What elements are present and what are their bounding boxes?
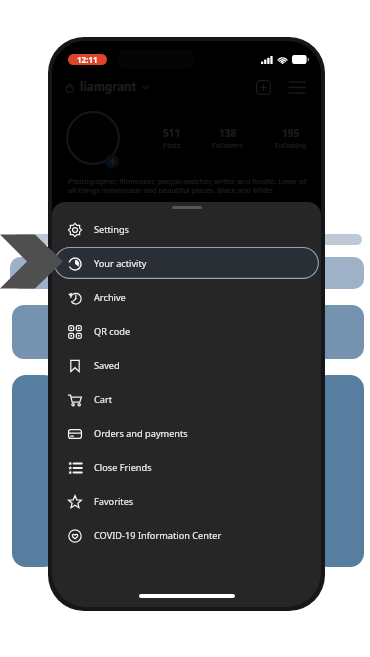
staticText: QR code xyxy=(94,325,131,338)
button[interactable]: Orders and payments xyxy=(52,416,321,450)
staticText: Close Friends xyxy=(94,461,152,474)
button[interactable]: COVID-19 Information Center xyxy=(52,518,321,552)
button[interactable]: Your activity xyxy=(52,246,321,280)
button[interactable]: New post xyxy=(251,75,275,99)
button[interactable]: Open menu xyxy=(285,75,309,99)
staticText: 195 xyxy=(282,126,300,140)
staticText: Posts xyxy=(163,141,181,151)
button[interactable]: QR code xyxy=(52,314,321,348)
button[interactable]: Archive xyxy=(52,280,321,314)
button[interactable]: Saved xyxy=(52,348,321,382)
staticText: COVID-19 Information Center xyxy=(94,529,222,542)
staticText: Saved xyxy=(94,359,120,372)
button[interactable]: Favorites xyxy=(52,484,321,518)
staticText: Archive xyxy=(94,291,126,304)
staticText: 511 xyxy=(163,126,181,140)
staticText: liamgrant xyxy=(80,79,137,95)
staticText: Following xyxy=(275,141,307,151)
staticText: 138 xyxy=(219,126,237,140)
button[interactable]: Close Friends xyxy=(52,450,321,484)
staticText: 12:11 xyxy=(77,54,98,65)
button[interactable]: Settings xyxy=(52,212,321,246)
staticText: Settings xyxy=(94,223,129,236)
staticText: Photographer, filmmaker, people-watcher,… xyxy=(68,176,309,196)
button[interactable]: Cart xyxy=(52,382,321,416)
staticText: Your activity xyxy=(94,257,147,270)
staticText: Followers xyxy=(212,141,244,151)
staticText: Orders and payments xyxy=(94,427,188,440)
staticText: Cart xyxy=(94,393,113,406)
staticText: Favorites xyxy=(94,495,134,508)
